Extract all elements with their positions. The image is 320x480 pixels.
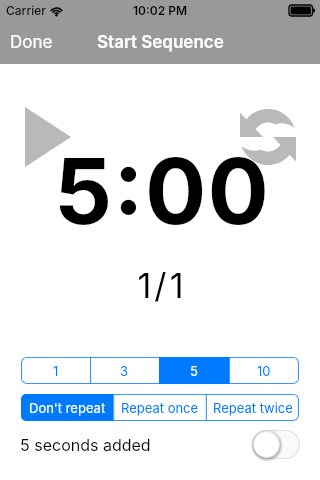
staticText: 1	[53, 363, 59, 379]
staticText: 5	[190, 363, 198, 379]
button[interactable]: Play	[25, 107, 71, 167]
staticText: 5:00	[2, 136, 320, 246]
staticText: 3	[120, 363, 129, 379]
button[interactable]: Done	[0, 22, 63, 63]
button[interactable]: 1	[21, 357, 90, 384]
staticText: 10	[257, 363, 271, 379]
button[interactable]: Repeat once	[113, 394, 206, 421]
button[interactable]: 3	[90, 357, 159, 384]
button[interactable]: Don't repeat	[21, 394, 113, 421]
button[interactable]: Repeat	[236, 104, 304, 172]
button[interactable]: 5	[159, 357, 229, 384]
staticText: Start Sequence	[97, 32, 224, 53]
staticText: 1/1	[2, 265, 320, 306]
button[interactable]: 10	[229, 357, 299, 384]
staticText: Don't repeat	[29, 400, 106, 416]
staticText: 5 seconds added	[20, 435, 151, 454]
button[interactable]: Repeat twice	[206, 394, 299, 421]
staticText: Done	[10, 32, 53, 53]
staticText: Repeat twice	[213, 400, 293, 416]
button[interactable]: Toggle	[252, 430, 300, 459]
staticText: Carrier	[6, 3, 46, 18]
staticText: Repeat once	[121, 400, 199, 416]
staticText: 10:02 PM	[133, 3, 188, 18]
